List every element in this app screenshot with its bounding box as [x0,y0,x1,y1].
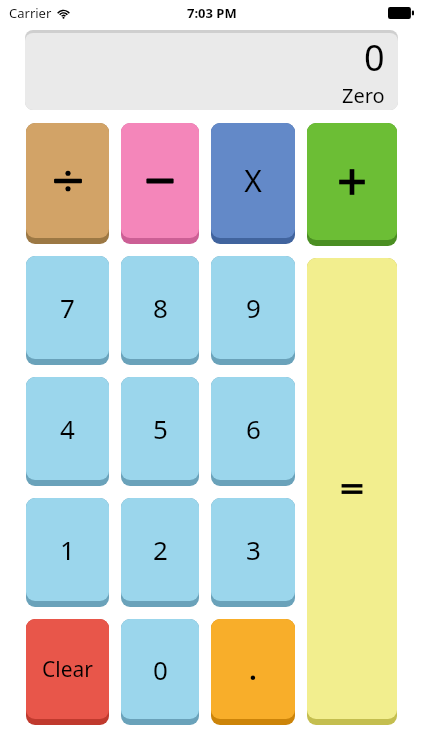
button[interactable]: 1 [26,498,109,607]
staticText: Carrier [9,4,52,22]
staticText: Clear [42,655,93,684]
button[interactable]: Minus [121,123,199,244]
staticText: 1 [60,532,75,567]
button[interactable]: Divide [26,123,109,244]
staticText: 6 [246,411,261,446]
staticText: Zero [342,82,385,106]
staticText: X [244,160,262,201]
staticText: 7:03 PM [187,4,237,22]
button[interactable]: Plus [307,123,397,246]
staticText: 8 [153,290,168,325]
button[interactable]: 9 [211,256,295,365]
button[interactable]: 0 [121,619,199,725]
button[interactable]: X [211,123,295,244]
button[interactable]: 7 [26,256,109,365]
button[interactable]: 6 [211,377,295,486]
staticText: 9 [246,290,261,325]
staticText: 4 [60,411,75,446]
staticText: 7 [60,290,75,325]
staticText: 3 [246,532,261,567]
staticText: 2 [153,532,168,567]
button[interactable]: 3 [211,498,295,607]
button[interactable]: Equals [307,258,397,725]
button[interactable]: 8 [121,256,199,365]
button[interactable]: 2 [121,498,199,607]
staticText: . [249,652,257,687]
button[interactable]: . [211,619,295,725]
button[interactable]: Clear [26,619,109,725]
button[interactable]: 4 [26,377,109,486]
button[interactable]: 5 [121,377,199,486]
staticText: 0 [153,652,168,687]
staticText: 0 [364,33,385,82]
staticText: 5 [153,411,168,446]
